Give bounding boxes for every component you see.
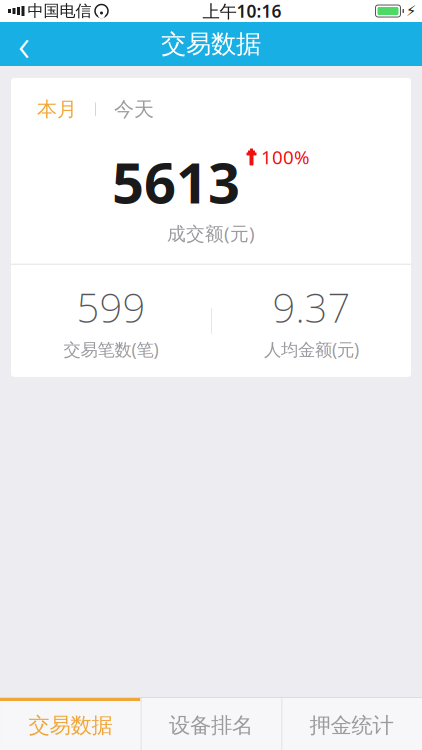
button[interactable]: Back — [0, 22, 48, 66]
staticText: 100% — [261, 145, 310, 169]
staticText: ⚡︎ — [406, 3, 416, 19]
staticText: 成交额(元) — [167, 221, 255, 246]
staticText: 设备排名 — [169, 712, 253, 739]
button[interactable]: 押金统计 — [281, 698, 422, 750]
staticText: 押金统计 — [310, 712, 394, 739]
staticText: 人均金额(元) — [264, 338, 359, 361]
staticText: 交易数据 — [28, 712, 112, 739]
staticText: 交易数据 — [161, 28, 261, 59]
staticText: 599 — [76, 281, 145, 334]
staticText: 中国电信 — [27, 1, 91, 21]
staticText: ‹ — [18, 14, 30, 74]
staticText: 本月 — [37, 97, 77, 122]
staticText: 上午10:16 — [202, 0, 281, 22]
button[interactable]: 本月 — [33, 94, 81, 125]
button[interactable]: 设备排名 — [141, 698, 281, 750]
button[interactable]: 今天 — [110, 94, 158, 125]
staticText: 交易笔数(笔) — [63, 338, 158, 361]
staticText: 5613 — [112, 145, 240, 219]
button[interactable]: 交易数据 — [0, 698, 141, 750]
staticText: 今天 — [114, 97, 154, 122]
staticText: 9.37 — [272, 281, 350, 334]
